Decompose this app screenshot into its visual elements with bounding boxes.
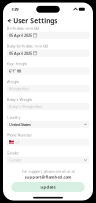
staticText: Country [7,115,21,120]
staticText: Gender [9,157,22,163]
staticText: Baby's Weight (lbs) [9,104,42,109]
staticText: Your Height [7,61,27,66]
staticText: 7:39 [11,7,18,12]
button[interactable]: update [11,182,85,192]
button[interactable]: Gender [7,156,89,164]
button[interactable]: United States [7,121,89,128]
staticText: 05 April 2025 [9,33,32,38]
staticText: User Settings [13,16,57,25]
staticText: Weight (lbs) [9,86,29,91]
staticText: 6'1" (ft) [9,68,21,74]
button[interactable]: 6'1" (ft) [7,67,89,74]
button[interactable]: Weight (lbs) [7,85,89,92]
staticText: Phone Number [7,132,33,138]
staticText: United States [9,122,31,127]
staticText: Baby's Weight [7,97,32,102]
staticText: update [40,184,55,190]
staticText: Baby birth date: mm/dd [7,43,48,49]
button[interactable]: Baby's Weight (lbs) [7,103,89,110]
button[interactable]: +1 [7,139,89,146]
button[interactable]: 05 April 2025 [7,32,89,39]
staticText: 05 April 2025 [9,50,32,56]
staticText: Weight [7,79,19,84]
staticText: Birth date: mm/dd [7,25,39,31]
button[interactable]: Back [7,19,12,23]
button[interactable]: support@flambed.com [24,174,71,179]
staticText: support@flambed.com [24,174,71,179]
button[interactable]: 05 April 2025 [7,49,89,57]
staticText: For support, please email us at [21,168,74,174]
staticText: Gender [7,150,20,155]
staticText: +1 [15,139,19,145]
